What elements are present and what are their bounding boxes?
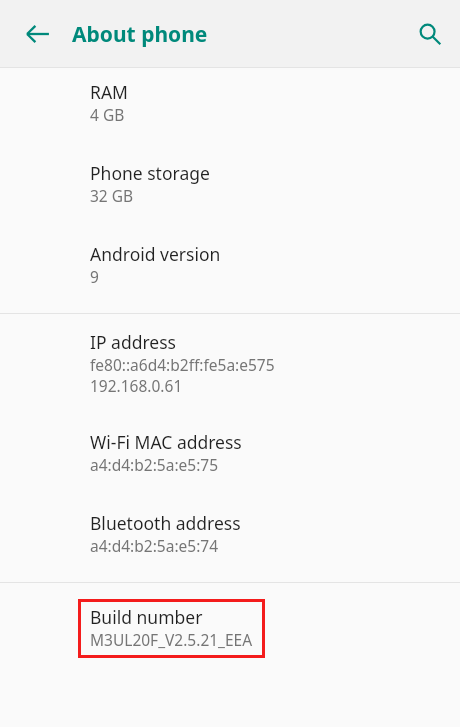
button[interactable]: IP address bbox=[0, 314, 460, 416]
button[interactable]: Bluetooth address bbox=[0, 497, 460, 582]
staticText: 192.168.0.61 bbox=[90, 375, 183, 396]
button[interactable]: Android version bbox=[0, 228, 460, 313]
button[interactable]: Navigate up bbox=[10, 6, 66, 62]
staticText: Build number bbox=[90, 605, 203, 629]
staticText: fe80::a6d4:b2ff:fe5a:e575 bbox=[90, 354, 275, 375]
staticText: RAM bbox=[90, 80, 128, 104]
button[interactable]: Phone storage bbox=[0, 147, 460, 228]
staticText: Wi-Fi MAC address bbox=[90, 430, 242, 454]
staticText: Bluetooth address bbox=[90, 511, 241, 535]
staticText: Phone storage bbox=[90, 161, 210, 185]
staticText: 32 GB bbox=[90, 185, 134, 206]
staticText: About phone bbox=[72, 20, 208, 49]
button[interactable]: Wi-Fi MAC address bbox=[0, 416, 460, 497]
button[interactable]: Build number bbox=[0, 583, 460, 672]
staticText: M3UL20F_V2.5.21_EEA bbox=[90, 629, 253, 650]
staticText: a4:d4:b2:5a:e5:74 bbox=[90, 535, 219, 556]
staticText: Android version bbox=[90, 242, 221, 266]
staticText: 4 GB bbox=[90, 104, 125, 125]
staticText: a4:d4:b2:5a:e5:75 bbox=[90, 454, 219, 475]
button[interactable]: RAM bbox=[0, 68, 460, 147]
button[interactable]: Search bbox=[404, 8, 456, 60]
staticText: 9 bbox=[90, 266, 99, 287]
staticText: IP address bbox=[90, 330, 176, 354]
